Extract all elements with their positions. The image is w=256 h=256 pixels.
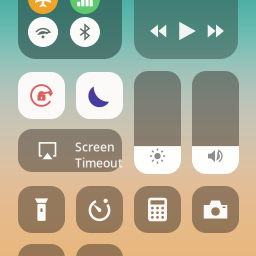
button[interactable]: Bluetooth bbox=[70, 17, 100, 47]
button[interactable]: Rotation Lock bbox=[18, 72, 65, 119]
button[interactable]: Flashlight bbox=[18, 186, 65, 233]
button[interactable]: Calculator bbox=[134, 186, 181, 233]
button[interactable]: Camera bbox=[192, 186, 239, 233]
button[interactable]: Do Not Disturb bbox=[76, 72, 123, 119]
button[interactable]: Screen bbox=[18, 129, 122, 172]
button[interactable]: Brightness bbox=[134, 71, 181, 174]
button[interactable]: Notes bbox=[76, 244, 123, 256]
button[interactable]: Volume bbox=[192, 71, 239, 174]
button[interactable]: Wi-Fi bbox=[28, 17, 58, 47]
button[interactable]: Airplane Mode bbox=[28, 0, 58, 14]
staticText: Timeout bbox=[75, 155, 123, 171]
button[interactable]: Rewind bbox=[146, 19, 170, 43]
button[interactable]: Low Power Mode bbox=[18, 244, 65, 256]
staticText: Screen bbox=[75, 139, 115, 155]
button[interactable]: Timer bbox=[76, 186, 123, 233]
button[interactable]: Fast Forward bbox=[204, 19, 228, 43]
button[interactable]: Play bbox=[174, 18, 200, 44]
button[interactable]: Cellular Data bbox=[70, 0, 100, 14]
